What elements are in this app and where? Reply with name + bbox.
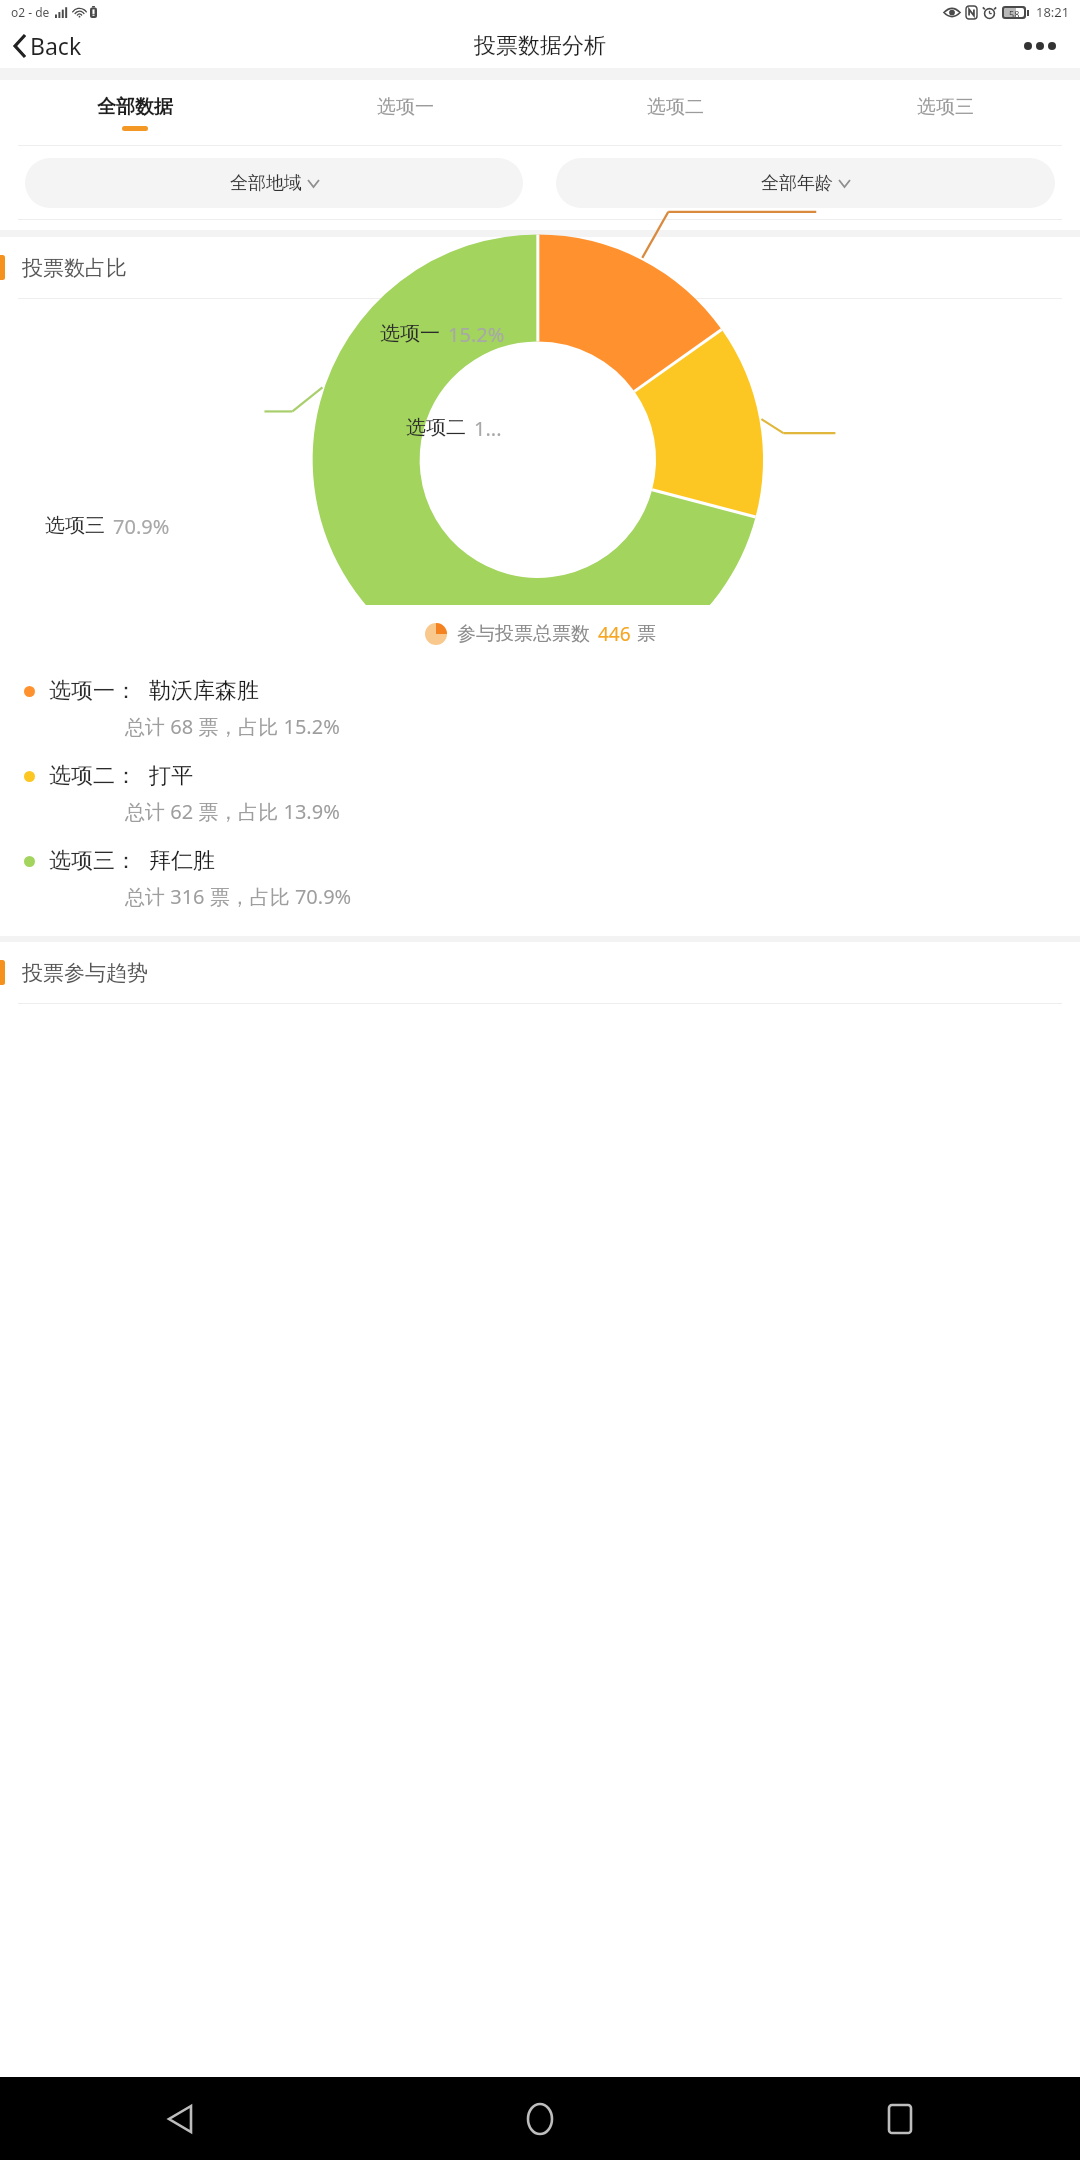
- staticText: 选项一: [380, 321, 440, 346]
- button[interactable]: Back: [8, 26, 88, 65]
- staticText: 选项二：: [49, 762, 137, 790]
- staticText: 总计 68 票，占比 15.2%: [125, 713, 340, 740]
- button[interactable]: 选项一：: [0, 663, 1080, 748]
- staticText: 选项二: [647, 95, 704, 119]
- staticText: 投票参与趋势: [22, 960, 148, 986]
- button[interactable]: Recent apps: [720, 2077, 1080, 2160]
- staticText: 总计 62 票，占比 13.9%: [125, 798, 340, 825]
- staticText: 勒沃库森胜: [149, 677, 259, 705]
- staticText: 58: [1009, 8, 1020, 17]
- staticText: 1...: [474, 415, 502, 442]
- staticText: 投票数占比: [22, 255, 127, 281]
- staticText: 总计 316 票，占比 70.9%: [125, 883, 352, 910]
- staticText: Back: [30, 30, 82, 61]
- button[interactable]: Home: [360, 2077, 720, 2160]
- staticText: 选项三: [917, 95, 974, 119]
- staticText: 选项二: [406, 415, 466, 440]
- staticText: 18:21: [1036, 3, 1070, 21]
- staticText: 70.9%: [113, 513, 170, 540]
- button[interactable]: 选项一: [270, 80, 540, 145]
- button[interactable]: 选项二: [540, 80, 810, 145]
- staticText: 选项一：: [49, 677, 137, 705]
- button[interactable]: Back: [0, 2077, 360, 2160]
- staticText: 全部地域: [230, 172, 302, 195]
- staticText: 选项三: [45, 513, 105, 538]
- button[interactable]: More options: [1016, 32, 1064, 60]
- staticText: 拜仁胜: [149, 847, 215, 875]
- staticText: 参与投票总票数: [457, 622, 590, 646]
- button[interactable]: 选项三：: [0, 833, 1080, 918]
- staticText: 打平: [149, 762, 193, 790]
- staticText: 选项三：: [49, 847, 137, 875]
- staticText: 全部年龄: [761, 172, 833, 195]
- button[interactable]: 选项二：: [0, 748, 1080, 833]
- staticText: 全部数据: [97, 95, 173, 119]
- button[interactable]: 全部地域: [25, 158, 523, 208]
- button[interactable]: 全部年龄: [556, 158, 1055, 208]
- staticText: 446: [598, 621, 631, 647]
- staticText: o2 - de: [11, 4, 50, 20]
- staticText: 投票数据分析: [474, 32, 606, 60]
- staticText: 票: [637, 622, 656, 646]
- button[interactable]: 选项三: [810, 80, 1080, 145]
- button[interactable]: 全部数据: [0, 80, 270, 145]
- staticText: 选项一: [377, 95, 434, 119]
- staticText: 15.2%: [448, 321, 505, 348]
